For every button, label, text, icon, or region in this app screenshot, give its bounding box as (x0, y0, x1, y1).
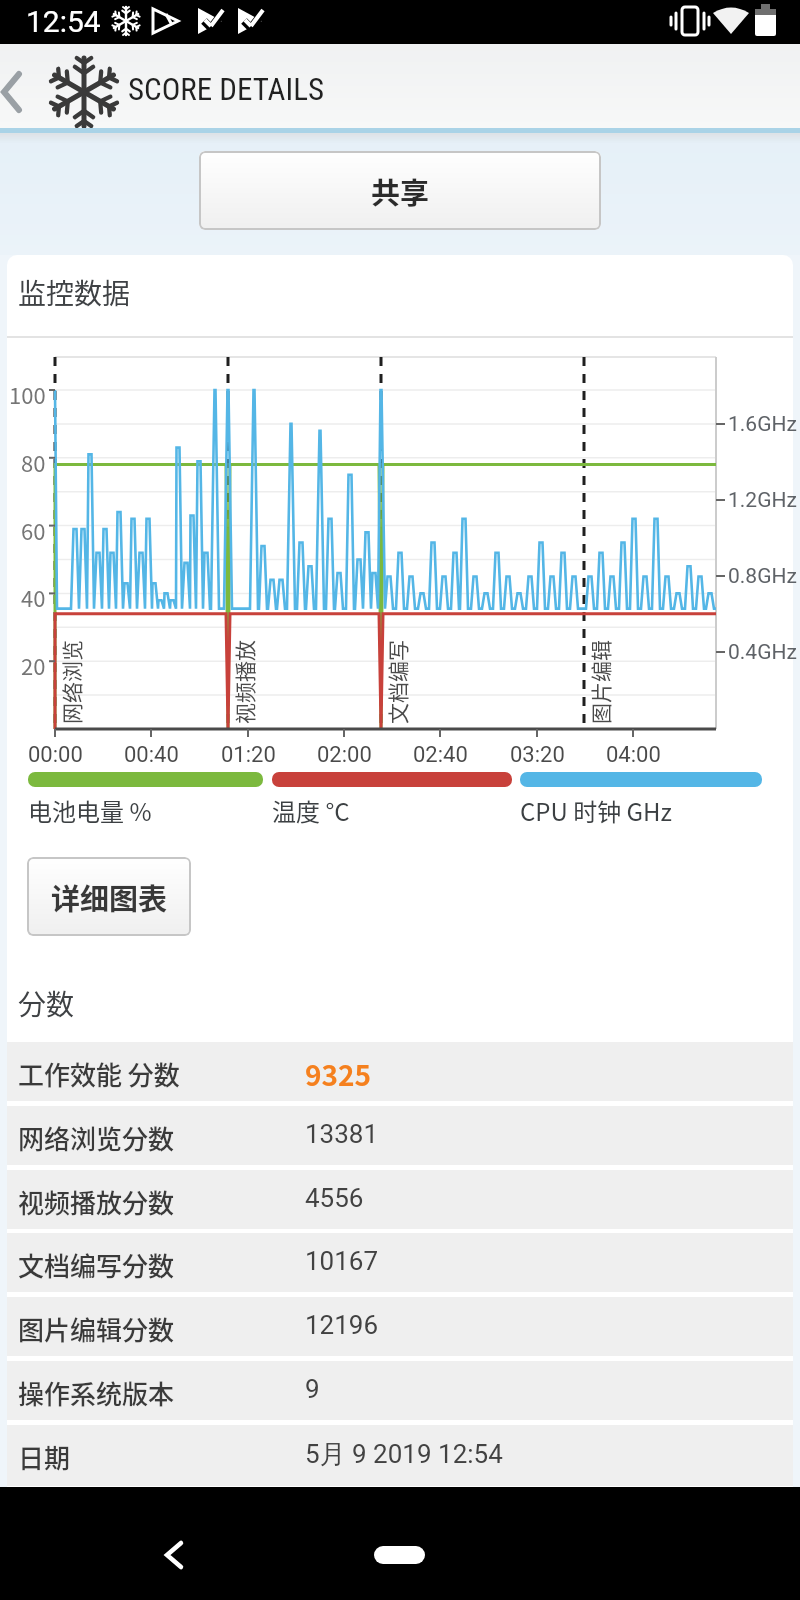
staticText: 04:00 (606, 742, 661, 768)
staticText: 工作效能 分数 (18, 1055, 180, 1093)
staticText: 02:40 (413, 742, 468, 768)
staticText: 100 (9, 378, 46, 410)
staticText: 40 (21, 581, 46, 613)
staticText: 图片编辑分数 (18, 1310, 175, 1348)
button[interactable]: 视频播放分数 (7, 1170, 793, 1229)
staticText: CPU 时钟 GHz (520, 793, 672, 828)
button[interactable] (150, 1527, 210, 1583)
staticText: 视频播放 (229, 640, 259, 724)
button[interactable]: 操作系统版本 (7, 1361, 793, 1420)
staticText: 4556 (305, 1183, 364, 1213)
staticText: 03:20 (510, 742, 565, 768)
staticText: 5月 9 2019 12:54 (305, 1438, 503, 1471)
staticText: 网络浏览 (56, 640, 86, 724)
button[interactable]: 详细图表 (27, 857, 191, 936)
staticText: 00:00 (28, 742, 83, 768)
button[interactable]: 网络浏览分数 (7, 1106, 793, 1165)
staticText: 12:54 (26, 4, 101, 39)
staticText: 00:40 (124, 742, 179, 768)
button[interactable]: 图片编辑分数 (7, 1297, 793, 1356)
staticText: 分数 (18, 983, 75, 1024)
staticText: 0.4GHz (728, 640, 797, 665)
staticText: 操作系统版本 (18, 1374, 175, 1412)
staticText: 20 (21, 649, 46, 681)
button[interactable]: 日期 (7, 1425, 793, 1486)
button[interactable]: 工作效能 分数 (7, 1042, 793, 1101)
button[interactable]: 文档编写分数 (7, 1233, 793, 1292)
staticText: 共享 (371, 170, 430, 212)
staticText: 温度 °C (272, 793, 350, 828)
staticText: 详细图表 (51, 876, 168, 918)
staticText: 02:00 (317, 742, 372, 768)
staticText: 0.8GHz (728, 564, 797, 589)
staticText: 图片编辑 (585, 640, 615, 724)
staticText: SCORE DETAILS (128, 71, 325, 107)
staticText: 80 (21, 446, 46, 478)
staticText: 1.6GHz (728, 412, 797, 437)
staticText: 文档编写分数 (18, 1246, 175, 1284)
staticText: 10167 (305, 1246, 379, 1276)
button[interactable]: 共享 (199, 151, 601, 230)
staticText: 60 (21, 514, 46, 546)
staticText: 01:20 (221, 742, 276, 768)
staticText: 电池电量 % (28, 793, 152, 828)
button[interactable] (0, 54, 130, 128)
staticText: 日期 (18, 1438, 71, 1476)
staticText: 视频播放分数 (18, 1183, 175, 1221)
staticText: 9 (305, 1374, 320, 1404)
staticText: 监控数据 (18, 272, 131, 313)
staticText: 12196 (305, 1310, 379, 1340)
staticText: 网络浏览分数 (18, 1119, 175, 1157)
staticText: 文档编写 (382, 640, 412, 724)
staticText: 13381 (305, 1119, 379, 1149)
staticText: 1.2GHz (728, 488, 797, 513)
staticText: 9325 (305, 1054, 372, 1095)
